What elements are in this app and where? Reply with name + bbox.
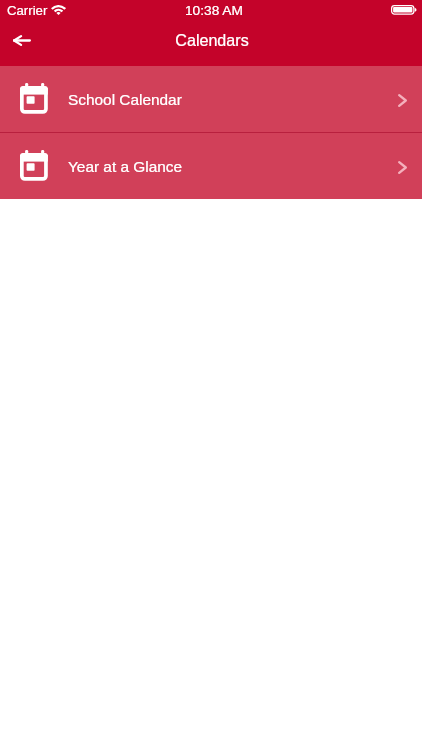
staticText: School Calendar bbox=[68, 91, 182, 108]
button[interactable]: Year at a Glance bbox=[0, 133, 422, 199]
staticText: 10:38 AM bbox=[185, 3, 243, 18]
staticText: Calendars bbox=[175, 31, 249, 49]
staticText: Carrier bbox=[7, 3, 48, 18]
button[interactable]: School Calendar bbox=[0, 66, 422, 132]
button[interactable]: Back bbox=[0, 26, 44, 54]
staticText: Year at a Glance bbox=[68, 158, 183, 175]
